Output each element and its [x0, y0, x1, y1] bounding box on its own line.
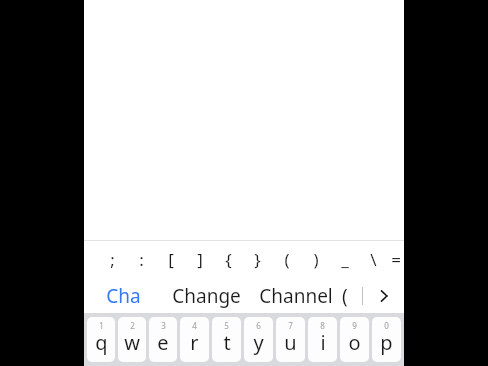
button[interactable]: 8: [308, 317, 337, 362]
button[interactable]: 0: [372, 317, 401, 362]
button[interactable]: :: [127, 241, 156, 278]
button[interactable]: ]: [185, 241, 214, 278]
staticText: q: [95, 329, 108, 356]
staticText: (: [342, 283, 348, 309]
staticText: Cha: [106, 283, 141, 309]
staticText: ]: [197, 248, 203, 271]
button[interactable]: More suggestions: [363, 278, 404, 313]
staticText: }: [254, 248, 261, 271]
staticText: 5: [224, 320, 229, 331]
button[interactable]: [: [156, 241, 185, 278]
staticText: _: [341, 248, 349, 271]
staticText: \: [370, 248, 377, 271]
staticText: u: [284, 329, 297, 356]
staticText: 1: [99, 320, 104, 331]
staticText: 7: [288, 320, 293, 331]
button[interactable]: 6: [244, 317, 273, 362]
button[interactable]: ;: [98, 241, 127, 278]
staticText: Channel: [259, 283, 333, 309]
button[interactable]: Cha: [84, 278, 162, 313]
staticText: e: [157, 329, 169, 356]
staticText: 4: [192, 320, 197, 331]
staticText: 9: [352, 320, 357, 331]
staticText: ): [313, 248, 319, 271]
staticText: r: [190, 329, 199, 356]
staticText: 2: [130, 320, 135, 331]
staticText: y: [253, 329, 264, 356]
button[interactable]: _: [330, 241, 359, 278]
staticText: =: [391, 248, 401, 271]
staticText: ;: [110, 248, 115, 271]
button[interactable]: 5: [212, 317, 241, 362]
staticText: p: [380, 329, 393, 356]
button[interactable]: 9: [340, 317, 369, 362]
staticText: 3: [161, 320, 166, 331]
button[interactable]: (: [272, 241, 301, 278]
staticText: Change: [172, 283, 241, 309]
staticText: 6: [256, 320, 261, 331]
staticText: t: [223, 329, 231, 356]
staticText: :: [139, 248, 144, 271]
button[interactable]: 4: [180, 317, 209, 362]
button[interactable]: Change: [162, 278, 250, 313]
staticText: 8: [320, 320, 325, 331]
button[interactable]: }: [243, 241, 272, 278]
staticText: (: [284, 248, 290, 271]
button[interactable]: 2: [118, 317, 146, 362]
button[interactable]: 1: [87, 317, 115, 362]
staticText: i: [320, 329, 326, 356]
button[interactable]: 7: [276, 317, 305, 362]
staticText: {: [225, 248, 232, 271]
staticText: w: [124, 329, 140, 356]
staticText: [: [168, 248, 174, 271]
button[interactable]: Channel: [250, 278, 342, 313]
button[interactable]: 3: [149, 317, 177, 362]
staticText: o: [348, 329, 361, 356]
staticText: 0: [384, 320, 389, 331]
button[interactable]: ): [301, 241, 330, 278]
button[interactable]: \: [359, 241, 388, 278]
button[interactable]: =: [388, 241, 404, 278]
button[interactable]: {: [214, 241, 243, 278]
